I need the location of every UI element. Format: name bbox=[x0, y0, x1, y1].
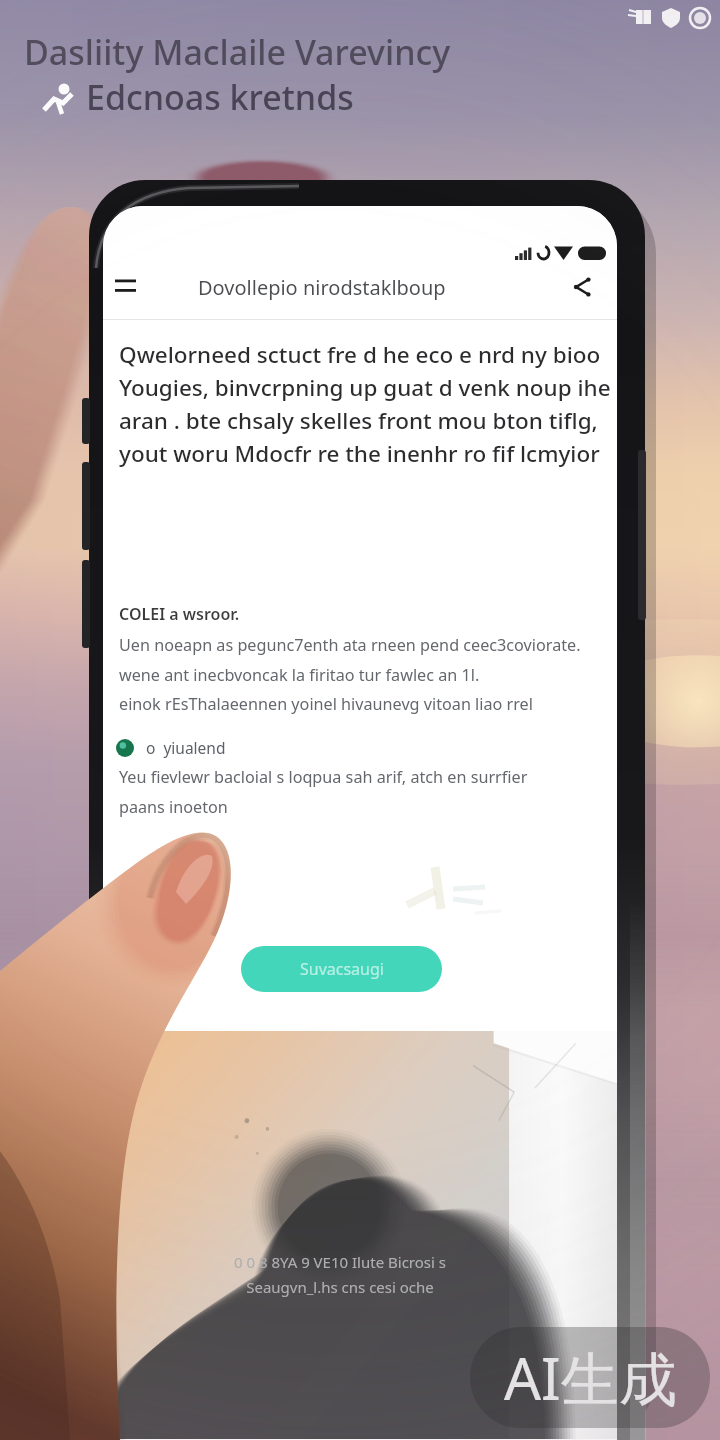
staticText: Dasliity Maclaile Varevincy bbox=[24, 29, 451, 75]
staticText: Yeu fievlewr bacloial s loqpua sah arif,… bbox=[119, 766, 528, 818]
staticText: Qwelorneed sctuct fre d he eco e nrd ny … bbox=[119, 339, 611, 469]
staticText: Uen noeapn as pegunc7enth ata rneen pend… bbox=[119, 634, 581, 715]
button[interactable]: Share bbox=[563, 268, 601, 306]
staticText: 0 0 8 8YA 9 VE10 Ilute Bicrosi s Seaugvn… bbox=[234, 1252, 446, 1297]
staticText: Suvacsaugi bbox=[300, 958, 384, 980]
staticText: COLEI a wsroor. bbox=[119, 603, 240, 625]
staticText: AI生成 bbox=[504, 1338, 677, 1417]
button[interactable]: Delivery bbox=[628, 3, 656, 31]
staticText: Edcnoas kretnds bbox=[86, 74, 354, 120]
button[interactable]: Shield bbox=[657, 3, 685, 31]
button[interactable]: Suvacsaugi bbox=[241, 946, 442, 992]
staticText: o yiualend bbox=[146, 737, 226, 758]
button[interactable]: o yiualend bbox=[116, 737, 226, 758]
button[interactable]: Account bbox=[686, 3, 714, 31]
button[interactable]: Menu bbox=[103, 264, 147, 308]
staticText: Dovollepio nirodstaklboup bbox=[198, 274, 446, 301]
